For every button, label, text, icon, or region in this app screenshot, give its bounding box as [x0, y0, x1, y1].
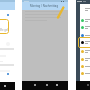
button[interactable]: Edit [56, 7, 65, 18]
button[interactable]: Navigation bar [0, 82, 15, 90]
staticText: Wie geht es [0, 28, 9, 32]
button[interactable] [81, 63, 90, 69]
button[interactable] [81, 6, 90, 12]
button[interactable] [81, 70, 90, 76]
button[interactable] [78, 37, 90, 48]
button[interactable] [81, 56, 90, 62]
button[interactable]: Navigation bar [76, 81, 90, 90]
button[interactable]: Montag / Nachmittag [30, 4, 59, 8]
button[interactable]: Recent apps [52, 81, 61, 89]
button[interactable] [81, 24, 90, 30]
button[interactable] [81, 48, 90, 54]
button[interactable] [81, 32, 90, 38]
button[interactable]: Wie geht es [0, 19, 9, 34]
button[interactable]: Back [30, 81, 39, 89]
button[interactable] [81, 39, 90, 45]
button[interactable]: Home [42, 81, 51, 89]
button[interactable] [81, 17, 90, 23]
